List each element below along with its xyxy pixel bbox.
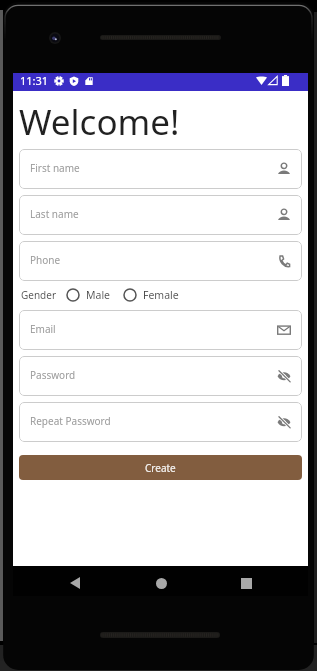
button[interactable]: First name — [19, 149, 302, 189]
staticText: Last name — [30, 207, 79, 221]
staticText: Gender — [21, 288, 57, 302]
button[interactable]: Email — [19, 310, 302, 350]
button[interactable]: Phone — [19, 241, 302, 281]
button[interactable]: Home — [150, 574, 172, 592]
staticText: Phone — [30, 253, 61, 267]
staticText: Male — [86, 288, 111, 302]
button[interactable]: Female — [123, 288, 179, 302]
staticText: First name — [30, 161, 80, 175]
staticText: Create — [145, 461, 176, 475]
staticText: Female — [143, 288, 179, 302]
button[interactable]: Password — [19, 356, 302, 396]
staticText: Repeat Password — [30, 414, 111, 428]
button[interactable]: Male — [66, 288, 111, 302]
staticText: Email — [30, 322, 56, 336]
button[interactable]: Last name — [19, 195, 302, 235]
button[interactable]: Repeat Password — [19, 402, 302, 442]
staticText: Password — [30, 368, 76, 382]
button[interactable]: Create — [19, 455, 302, 480]
staticText: Welcome! — [19, 98, 180, 146]
button[interactable]: Recents — [235, 574, 257, 592]
button[interactable]: Back — [64, 574, 86, 592]
staticText: 11:31 — [20, 73, 49, 88]
